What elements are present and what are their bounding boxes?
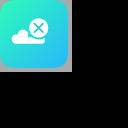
button[interactable]: Cloud offline bbox=[0, 0, 68, 68]
